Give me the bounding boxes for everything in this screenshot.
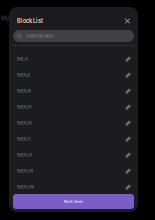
button[interactable]: Block Users xyxy=(13,194,134,209)
button[interactable]: testXLII xyxy=(9,67,138,83)
button[interactable]: testXLVIII xyxy=(9,179,138,195)
button[interactable]: testXLV xyxy=(9,131,138,147)
staticText: Search by name xyxy=(25,33,53,38)
button[interactable]: testXLVII xyxy=(9,163,138,179)
staticText: testXLVIII xyxy=(17,184,34,189)
staticText: testXLIX xyxy=(17,120,32,125)
button[interactable]: testXLIII xyxy=(9,83,138,99)
staticText: testXLII xyxy=(17,72,30,77)
staticText: testXLIV xyxy=(17,104,32,109)
staticText: test_X xyxy=(17,56,28,61)
staticText: Block List xyxy=(17,17,43,24)
button[interactable]: Search by name xyxy=(13,30,134,42)
staticText: testXLV xyxy=(17,136,31,141)
staticText: testXLVI xyxy=(17,152,32,157)
button[interactable]: test_X xyxy=(9,51,138,67)
staticText: Block Users xyxy=(64,200,83,203)
staticText: testXLIII xyxy=(17,88,31,93)
button[interactable]: testXLIV xyxy=(9,99,138,115)
button[interactable]: Close xyxy=(122,15,133,26)
staticText: My xyxy=(1,15,10,22)
staticText: testXLVII xyxy=(17,168,33,173)
button[interactable]: testXLIX xyxy=(9,115,138,131)
button[interactable]: testXLVI xyxy=(9,147,138,163)
